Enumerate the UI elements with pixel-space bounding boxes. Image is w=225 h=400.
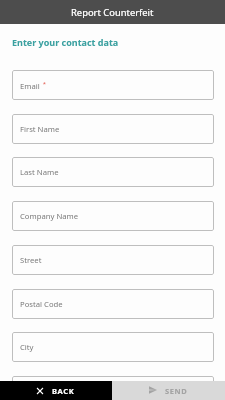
staticText: First Name	[20, 124, 60, 134]
button[interactable]: Last Name	[12, 157, 214, 187]
staticText: Postal Code	[20, 299, 63, 309]
button[interactable]: Company Name	[12, 201, 214, 231]
staticText: Country	[20, 386, 49, 396]
button[interactable]: Street	[12, 245, 214, 275]
staticText: Last Name	[20, 167, 59, 177]
staticText: Email *	[20, 80, 47, 91]
button[interactable]: Email *	[12, 70, 214, 100]
staticText: Enter your contact data	[12, 36, 119, 48]
button[interactable]: Country	[12, 376, 214, 400]
button[interactable]: First Name	[12, 114, 214, 144]
staticText: BACK	[52, 386, 75, 396]
button[interactable]: Postal Code	[12, 289, 214, 319]
other: Back	[37, 388, 43, 394]
staticText: Company Name	[20, 211, 79, 221]
staticText: Report Counterfeit	[71, 6, 154, 19]
staticText: City	[20, 342, 34, 352]
button[interactable]: City	[12, 332, 214, 362]
other: Send	[149, 386, 157, 394]
staticText: Street	[20, 255, 42, 265]
staticText: SEND	[165, 386, 188, 396]
button[interactable]: Back	[0, 381, 112, 400]
button[interactable]: Send	[112, 381, 225, 400]
